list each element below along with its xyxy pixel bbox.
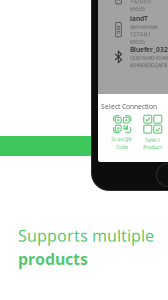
staticText: demomode	[130, 23, 158, 30]
staticText: Bluefer_03226	[130, 45, 168, 54]
staticText: CEB7A5A0-6540	[130, 54, 168, 61]
staticText: 8049083D2AF8	[130, 62, 167, 69]
staticText: landT	[130, 14, 148, 23]
staticText: Code	[116, 143, 128, 150]
staticText: Scan QR-	[111, 136, 133, 143]
staticText: 65535	[130, 5, 145, 12]
staticText: products	[18, 248, 88, 269]
staticText: Select Connection	[101, 102, 157, 111]
button[interactable]: Select	[137, 115, 168, 151]
button[interactable]: Scan QR-	[107, 115, 137, 151]
staticText: 65535	[130, 38, 145, 45]
staticText: Select	[145, 136, 160, 143]
button[interactable]: Sensor_01	[113, 0, 168, 12]
staticText: 127.0.0.1	[130, 31, 151, 38]
button[interactable]: Bluefer_03226	[113, 45, 168, 69]
button[interactable]: landT	[113, 14, 168, 45]
staticText: Product	[143, 144, 162, 151]
staticText: 192.0.0.5	[130, 0, 151, 5]
staticText: Supports multiple	[18, 225, 154, 246]
